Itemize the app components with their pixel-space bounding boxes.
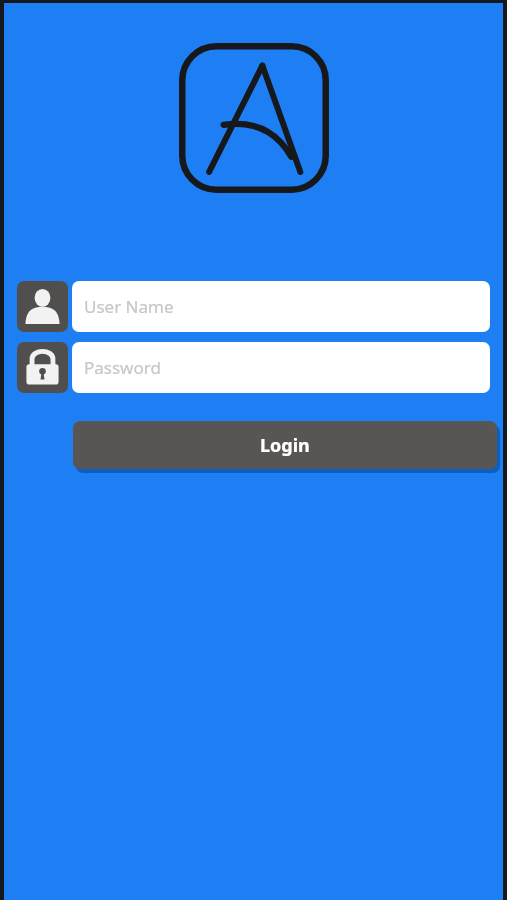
button[interactable]: Login [73, 421, 497, 469]
staticText: User Name [84, 295, 174, 318]
button[interactable]: User Name [72, 281, 490, 332]
button[interactable]: User name [17, 281, 68, 332]
button[interactable]: Password [72, 342, 490, 393]
staticText: Login [260, 433, 310, 458]
button[interactable]: Password [17, 342, 68, 393]
staticText: Password [84, 356, 161, 379]
